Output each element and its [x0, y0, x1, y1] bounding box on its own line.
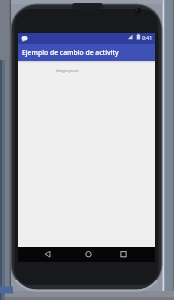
staticText: 9:41 [142, 34, 153, 41]
button[interactable]: diegorys.es [56, 68, 79, 74]
staticText: Ejemplo de cambio de activity [22, 48, 119, 57]
button[interactable] [115, 247, 132, 262]
button[interactable] [39, 247, 56, 262]
button[interactable] [80, 247, 97, 262]
